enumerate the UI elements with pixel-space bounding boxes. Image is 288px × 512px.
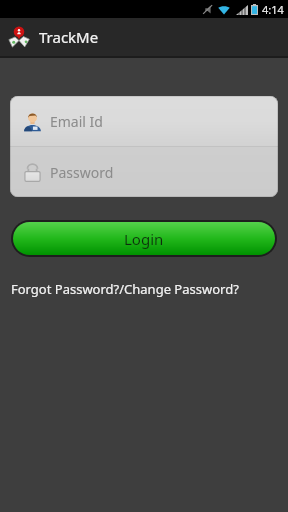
button[interactable]: Login — [13, 222, 275, 255]
button[interactable]: Password — [10, 147, 278, 197]
staticText: TrackMe — [39, 27, 99, 47]
button[interactable]: Forgot Password?/Change Password? — [11, 278, 239, 300]
staticText: Forgot Password?/Change Password? — [11, 280, 239, 298]
staticText: Email Id — [50, 112, 103, 131]
button[interactable]: Email Id — [10, 96, 278, 146]
staticText: Login — [124, 229, 164, 249]
staticText: Password — [50, 163, 114, 182]
staticText: 4:14 — [262, 2, 284, 17]
